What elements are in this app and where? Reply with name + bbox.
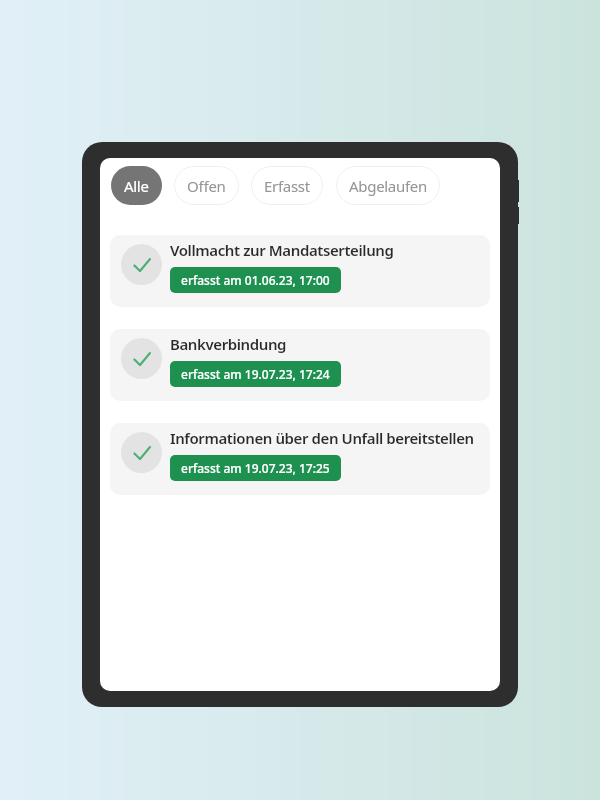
staticText: erfasst am 01.06.23, 17:00 bbox=[181, 272, 330, 288]
staticText: Vollmacht zur Mandatserteilung bbox=[170, 240, 394, 260]
other: Erledigt bbox=[121, 432, 162, 473]
staticText: Offen bbox=[187, 176, 226, 196]
button[interactable]: Erledigt bbox=[110, 329, 490, 401]
staticText: Bankverbindung bbox=[170, 334, 287, 354]
button[interactable]: Offen bbox=[174, 166, 239, 205]
other: Erledigt bbox=[121, 338, 162, 379]
staticText: Alle bbox=[124, 176, 149, 196]
button[interactable]: Erledigt bbox=[110, 235, 490, 307]
button[interactable]: Abgelaufen bbox=[336, 166, 440, 205]
other: Erledigt bbox=[121, 244, 162, 285]
button[interactable]: Erledigt bbox=[110, 423, 490, 495]
staticText: erfasst am 19.07.23, 17:24 bbox=[181, 366, 330, 382]
staticText: Abgelaufen bbox=[349, 176, 427, 196]
button[interactable]: Alle bbox=[111, 166, 162, 205]
button[interactable]: Erfasst bbox=[251, 166, 323, 205]
staticText: Erfasst bbox=[264, 176, 310, 196]
staticText: Informationen über den Unfall bereitstel… bbox=[170, 428, 474, 448]
staticText: erfasst am 19.07.23, 17:25 bbox=[181, 460, 330, 476]
